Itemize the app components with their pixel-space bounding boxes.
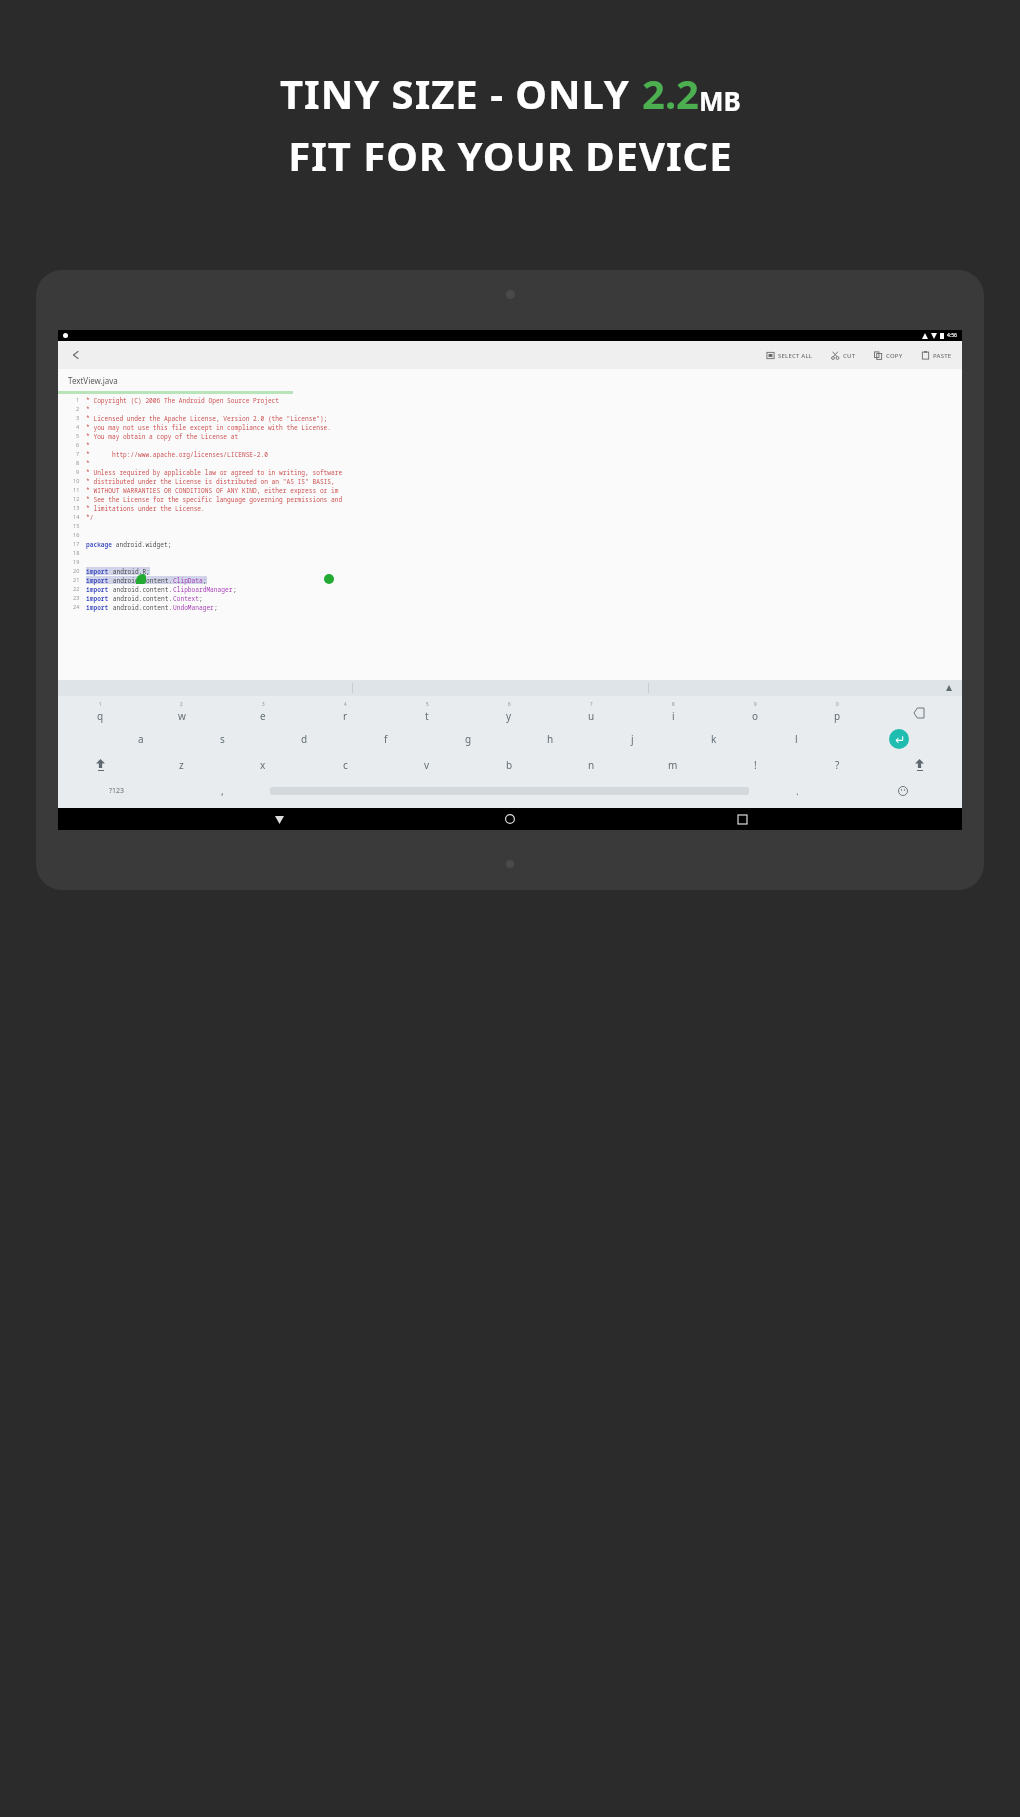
button[interactable]: Back	[268, 808, 290, 830]
button[interactable]: a	[100, 726, 181, 752]
staticText: 22	[73, 585, 80, 592]
staticText: w	[178, 709, 186, 723]
button[interactable]: COPY	[872, 348, 905, 363]
button[interactable]: b	[468, 752, 550, 778]
staticText: u	[588, 709, 595, 723]
button[interactable]: Recents	[731, 808, 753, 830]
staticText: 3	[76, 414, 80, 421]
staticText: *	[86, 405, 90, 413]
staticText: d	[301, 732, 308, 746]
staticText: import	[86, 585, 109, 593]
button[interactable]: x	[222, 752, 304, 778]
button[interactable]: CUT	[829, 348, 858, 363]
staticText: android.R;	[109, 567, 150, 575]
staticText: android.content.	[109, 594, 173, 602]
staticText: s	[220, 732, 225, 746]
staticText: TINY SIZE - ONLY	[280, 66, 642, 120]
staticText: * Copyright (C) 2006 The Android Open So…	[86, 396, 280, 404]
staticText: 6	[76, 441, 80, 448]
staticText: 17	[73, 540, 80, 547]
staticText: android.content.	[109, 576, 173, 584]
staticText: ?123	[109, 786, 125, 796]
button[interactable]: Enter	[889, 729, 909, 749]
button[interactable]: 7	[550, 700, 632, 726]
button[interactable]: k	[673, 726, 755, 752]
staticText: 12	[73, 495, 80, 502]
staticText: import	[86, 603, 109, 611]
button[interactable]: ?	[796, 752, 878, 778]
button[interactable]: Expand suggestions	[944, 683, 954, 693]
button[interactable]: PASTE	[919, 348, 954, 363]
button[interactable]: l	[755, 726, 837, 752]
button[interactable]: 3	[222, 700, 304, 726]
staticText: ,	[221, 784, 224, 798]
staticText: * Licensed under the Apache License, Ver…	[86, 414, 328, 422]
staticText: * See the License for the specific langu…	[86, 495, 343, 503]
button[interactable]: 9	[714, 700, 796, 726]
button[interactable]: 6	[468, 700, 550, 726]
button[interactable]: 5	[386, 700, 468, 726]
staticText: k	[711, 732, 717, 746]
staticText: 14	[73, 513, 80, 520]
staticText: TextView.java	[68, 375, 118, 386]
staticText: MB	[699, 83, 741, 118]
staticText: 3	[262, 701, 265, 707]
staticText: android.content.	[109, 585, 173, 593]
staticText: SELECT ALL	[778, 352, 813, 360]
button[interactable]: Home	[499, 808, 521, 830]
staticText: i	[672, 709, 675, 723]
staticText: v	[424, 758, 430, 772]
button[interactable]: 1	[60, 700, 141, 726]
button[interactable]: g	[427, 726, 509, 752]
button[interactable]: 8	[632, 700, 714, 726]
button[interactable]: !	[714, 752, 796, 778]
staticText: ;	[203, 576, 207, 584]
staticText: 24	[73, 603, 80, 610]
button[interactable]: h	[509, 726, 591, 752]
staticText: * Unless required by applicable law or a…	[86, 468, 343, 476]
staticText: * http://www.apache.org/licenses/LICENSE…	[86, 450, 268, 458]
button[interactable]: j	[591, 726, 673, 752]
staticText: *	[86, 459, 90, 467]
button[interactable]: z	[141, 752, 222, 778]
staticText: 11	[73, 486, 80, 493]
button[interactable]: d	[263, 726, 345, 752]
button[interactable]: SELECT ALL	[764, 348, 815, 363]
staticText: ;	[214, 603, 218, 611]
staticText: * WITHOUT WARRANTIES OR CONDITIONS OF AN…	[86, 486, 339, 494]
staticText: b	[506, 758, 513, 772]
button[interactable]: 4	[304, 700, 386, 726]
staticText: 9	[754, 701, 757, 707]
staticText: f	[384, 732, 388, 746]
staticText: j	[631, 732, 634, 746]
staticText: n	[588, 758, 595, 772]
button[interactable]: n	[550, 752, 632, 778]
button[interactable]: Back	[66, 345, 86, 365]
button[interactable]: Emoji	[845, 778, 960, 804]
button[interactable]: Shift	[878, 752, 960, 778]
button[interactable]: 0	[796, 700, 878, 726]
staticText: */	[86, 513, 94, 521]
button[interactable]: f	[345, 726, 427, 752]
button[interactable]: ?123	[60, 778, 174, 804]
staticText: 16	[73, 531, 80, 538]
button[interactable]: Shift	[60, 752, 141, 778]
staticText: COPY	[886, 352, 903, 360]
button[interactable]: Backspace	[878, 700, 960, 726]
staticText: 5	[426, 701, 429, 707]
button[interactable]: 2	[141, 700, 222, 726]
button[interactable]: m	[632, 752, 714, 778]
button[interactable]: s	[181, 726, 263, 752]
staticText: z	[179, 758, 184, 772]
staticText: import	[86, 576, 109, 584]
staticText: package	[86, 540, 112, 548]
staticText: r	[343, 709, 348, 723]
staticText: 7	[76, 450, 80, 457]
staticText: UndoManager	[173, 603, 214, 611]
button[interactable]: v	[386, 752, 468, 778]
staticText: * limitations under the License.	[86, 504, 205, 512]
button[interactable]: c	[304, 752, 386, 778]
